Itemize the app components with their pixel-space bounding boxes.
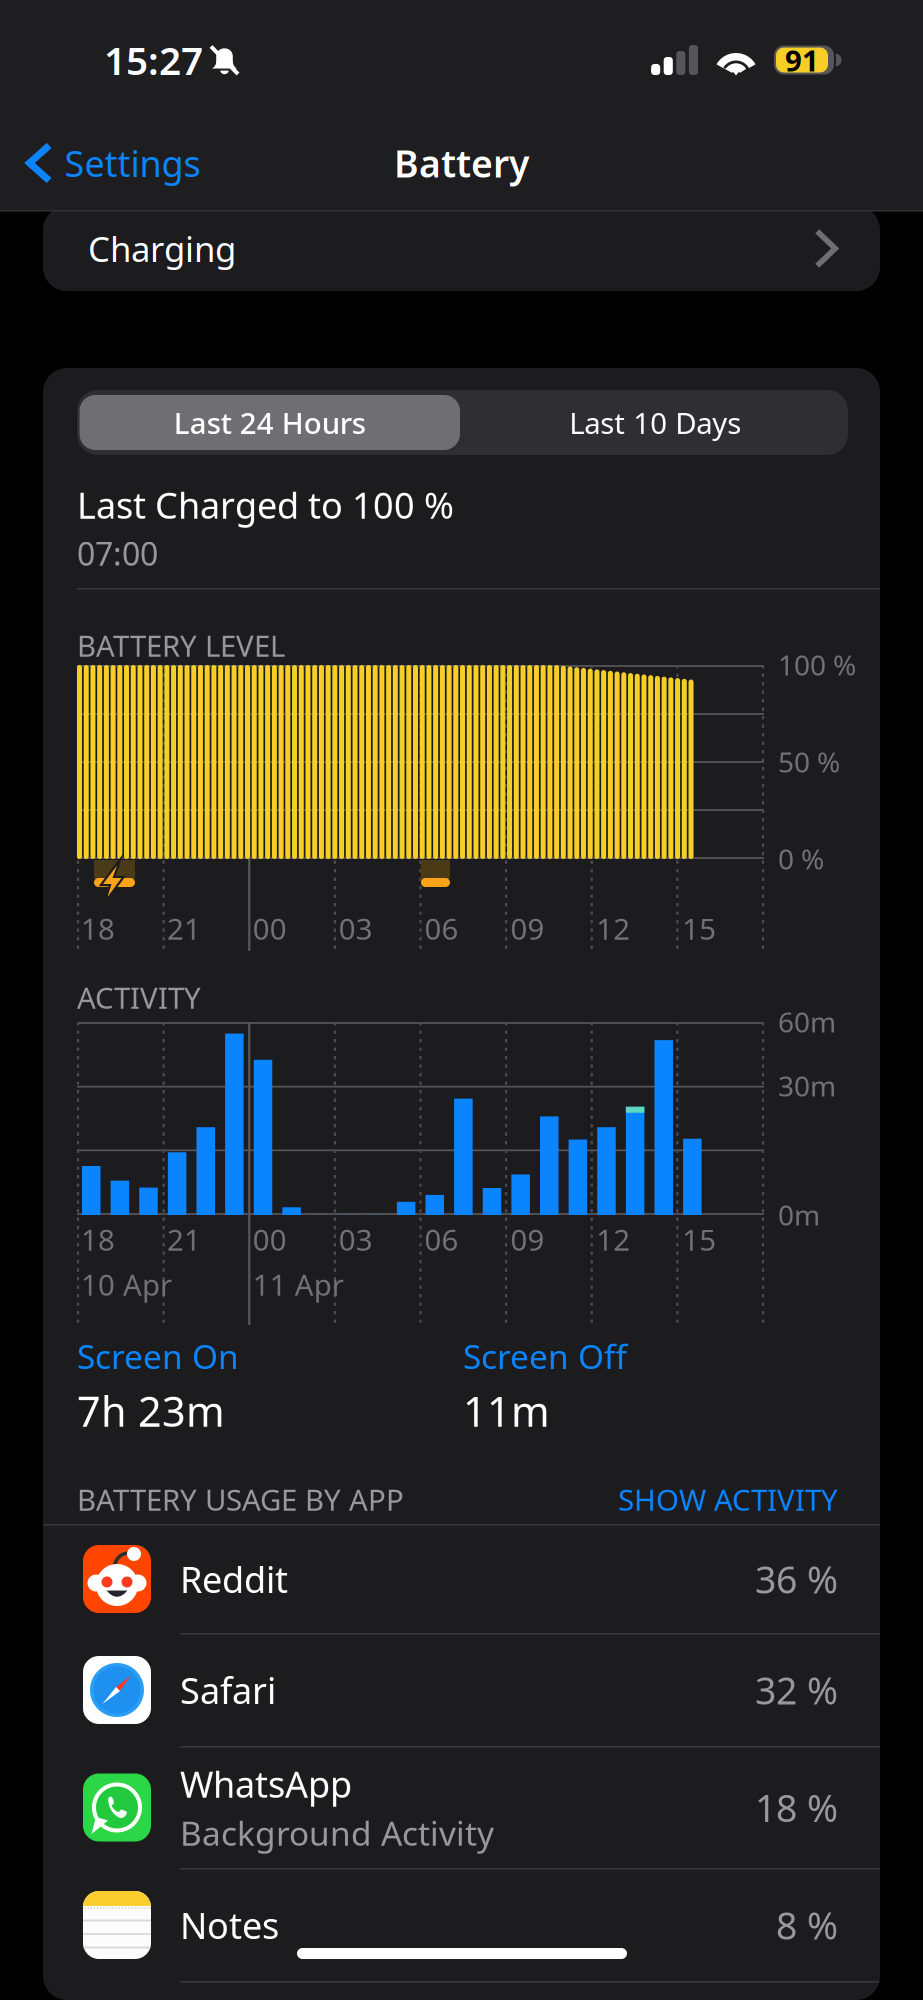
staticText: 15 [682,909,716,948]
staticText: 10 Apr [81,1265,172,1304]
staticText: 21 [167,909,201,948]
staticText: 07:00 [77,532,158,574]
staticText: Last 10 Days [569,403,741,442]
staticText: Screen On [77,1334,239,1378]
staticText: 100 % [778,646,856,683]
staticText: Notes [180,1901,279,1949]
staticText: BATTERY USAGE BY APP [77,1480,404,1519]
staticText: Last 24 Hours [174,403,366,442]
staticText: 11 Apr [253,1265,344,1304]
button[interactable]: Last 10 Days [462,390,848,455]
staticText: 00 [253,1220,287,1259]
staticText: SHOW ACTIVITY [618,1480,838,1519]
staticText: 0 % [778,840,824,877]
button[interactable]: Settings [0,125,201,201]
staticText: Settings [65,139,201,187]
staticText: 06 [424,909,458,948]
staticText: Reddit [180,1555,288,1603]
staticText: 09 [510,1220,544,1259]
staticText: 06 [424,1220,458,1259]
button[interactable]: Reddit [43,1525,880,1633]
staticText: 60m [778,1003,836,1040]
staticText: ACTIVITY [77,978,201,1017]
staticText: 0m [778,1196,820,1233]
staticText: 30m [778,1067,836,1104]
staticText: 32 % [755,1665,838,1715]
staticText: 50 % [778,743,840,780]
staticText: 12 [596,1220,630,1259]
staticText: Safari [180,1666,276,1714]
staticText: 12 [596,909,630,948]
staticText: Last Charged to 100 % [77,481,454,529]
staticText: 18 % [755,1783,838,1832]
staticText: 00 [253,909,287,948]
button[interactable]: Last 24 Hours [77,390,462,455]
staticText: 03 [339,909,373,948]
staticText: Screen Off [463,1334,627,1378]
button[interactable]: Notes [43,1869,880,1981]
button[interactable]: WhatsApp [43,1747,880,1868]
staticText: Charging [88,225,236,271]
staticText: 03 [339,1220,373,1259]
staticText: 21 [167,1220,201,1259]
staticText: WhatsApp [180,1760,352,1808]
staticText: 8 % [776,1900,838,1950]
staticText: BATTERY LEVEL [77,626,285,665]
staticText: Battery [394,138,529,188]
button[interactable]: SHOW ACTIVITY [618,1480,838,1519]
button[interactable]: Safari [43,1634,880,1746]
staticText: 36 % [755,1554,838,1604]
staticText: Background Activity [180,1811,494,1855]
staticText: 15:27 [104,34,203,86]
staticText: 09 [510,909,544,948]
staticText: 91 [785,40,819,79]
staticText: 11m [463,1383,550,1438]
staticText: 18 [81,1220,115,1259]
staticText: 7h 23m [77,1383,225,1438]
staticText: 18 [81,909,115,948]
button[interactable]: Charging [43,206,880,291]
staticText: 15 [682,1220,716,1259]
